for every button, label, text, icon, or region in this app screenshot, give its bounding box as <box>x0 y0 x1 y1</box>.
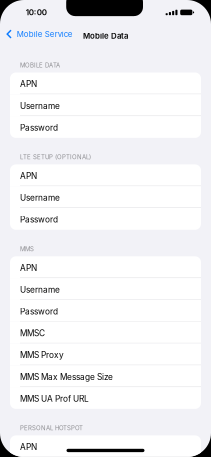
staticText: 10:00 <box>26 8 47 17</box>
staticText: MMS UA Prof URL <box>20 394 89 404</box>
staticText: Password <box>20 215 58 225</box>
staticText: MMS Max Message Size <box>20 372 113 382</box>
staticText: Password <box>20 306 58 316</box>
staticText: Username <box>20 193 60 203</box>
staticText: MMS Proxy <box>20 350 64 360</box>
staticText: LTE SETUP (OPTIONAL) <box>20 153 91 161</box>
staticText: APN <box>20 79 37 89</box>
button[interactable]: Password <box>10 300 201 322</box>
button[interactable]: Username <box>10 94 201 116</box>
button[interactable]: Username <box>10 278 201 300</box>
button[interactable]: MMS Proxy <box>10 343 201 365</box>
button[interactable]: Password <box>10 208 201 230</box>
button[interactable]: Mobile Service <box>0 25 78 43</box>
staticText: MMSC <box>20 328 45 338</box>
button[interactable]: MMS UA Prof URL <box>10 387 201 409</box>
staticText: MOBILE DATA <box>20 62 60 69</box>
staticText: PERSONAL HOTSPOT <box>20 424 83 432</box>
staticText: Username <box>20 101 60 111</box>
button[interactable]: MMS Max Message Size <box>10 365 201 387</box>
button[interactable]: Password <box>10 116 201 138</box>
staticText: Username <box>20 285 60 295</box>
staticText: APN <box>20 171 37 181</box>
button[interactable]: MMSC <box>10 322 201 343</box>
button[interactable]: APN <box>10 72 201 94</box>
button[interactable]: Username <box>10 186 201 208</box>
button[interactable]: APN <box>10 164 201 186</box>
staticText: APN <box>20 442 37 452</box>
button[interactable]: APN <box>10 435 201 457</box>
button[interactable]: APN <box>10 256 201 278</box>
staticText: Mobile Service <box>17 29 73 39</box>
staticText: APN <box>20 263 37 273</box>
staticText: Mobile Data <box>83 31 128 41</box>
staticText: Password <box>20 123 58 133</box>
staticText: MMS <box>20 245 34 253</box>
